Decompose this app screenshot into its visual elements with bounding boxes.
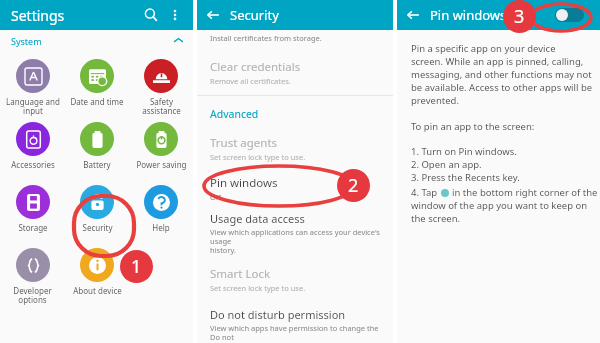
button[interactable]: Smart Lock [197, 266, 393, 293]
staticText: 4. Tap [411, 186, 438, 199]
button[interactable]: Pin windows [197, 175, 393, 202]
staticText: Trust agents [210, 135, 278, 151]
button[interactable]: Advanced [210, 107, 259, 121]
button[interactable]: Date and time [65, 53, 129, 116]
staticText: Pin a specific app on your device screen… [411, 42, 593, 107]
button[interactable]: Usage data access [197, 211, 393, 255]
button[interactable]: Storage [0, 179, 65, 242]
button[interactable]: Help [129, 179, 193, 242]
staticText: Pin windows [430, 6, 507, 24]
staticText: View which apps have permission to chang… [210, 323, 387, 343]
staticText: Developer options [13, 285, 52, 305]
staticText: About device [73, 285, 122, 296]
staticText: 1. Turn on Pin windows. 2. Open an app. … [411, 145, 520, 184]
button[interactable]: Search [139, 3, 163, 27]
button[interactable]: Trust agents [197, 135, 393, 162]
staticText: Date and time [70, 96, 124, 107]
staticText: Do not disturb permission [210, 307, 346, 322]
staticText: in the bottom right corner of the [452, 186, 598, 199]
staticText: Security [82, 222, 113, 233]
staticText: Battery [83, 159, 111, 170]
staticText: Power saving [136, 159, 187, 170]
button[interactable]: Language and input [0, 53, 65, 116]
staticText: Set screen lock type to use. [210, 152, 306, 162]
staticText: window of the app you want to keep on th… [411, 199, 588, 225]
staticText: Storage [18, 222, 48, 233]
staticText: Remove all certificates. [210, 76, 291, 86]
staticText: Clear credentials [210, 59, 301, 75]
button[interactable]: Do not disturb permission [197, 307, 393, 343]
staticText: Set screen lock type to use. [210, 283, 306, 293]
button[interactable]: About device [65, 242, 129, 305]
button[interactable]: Battery [65, 116, 129, 179]
staticText: Smart Lock [210, 266, 271, 282]
staticText: View which applications can access your … [210, 227, 387, 255]
button[interactable]: More options [163, 3, 187, 27]
button[interactable]: Back [202, 4, 224, 26]
button[interactable]: Developer options [0, 242, 65, 305]
button[interactable]: System [0, 30, 193, 51]
button[interactable]: Safety assistance [129, 53, 193, 116]
button[interactable]: Power saving [129, 116, 193, 179]
staticText: To pin an app to the screen: [411, 120, 535, 133]
staticText: System [11, 35, 42, 47]
staticText: Usage data access [210, 211, 305, 226]
button[interactable]: Pin windows on [555, 8, 584, 22]
staticText: 3 [514, 4, 525, 29]
staticText: 2 [348, 173, 359, 198]
button[interactable]: Back [402, 4, 424, 26]
staticText: Accessories [11, 159, 55, 170]
staticText: Settings [11, 6, 65, 25]
staticText: Pin windows [210, 175, 278, 191]
button[interactable]: Accessories [0, 116, 65, 179]
staticText: Security [230, 6, 279, 24]
button[interactable]: Security [65, 179, 129, 242]
staticText: Language and input [6, 96, 60, 116]
staticText: Off [210, 192, 222, 202]
staticText: 1 [131, 254, 142, 279]
staticText: Install certificates from storage. [210, 33, 322, 43]
button[interactable]: Clear credentials [197, 59, 393, 86]
staticText: Safety assistance [142, 96, 181, 116]
staticText: Help [152, 222, 170, 233]
